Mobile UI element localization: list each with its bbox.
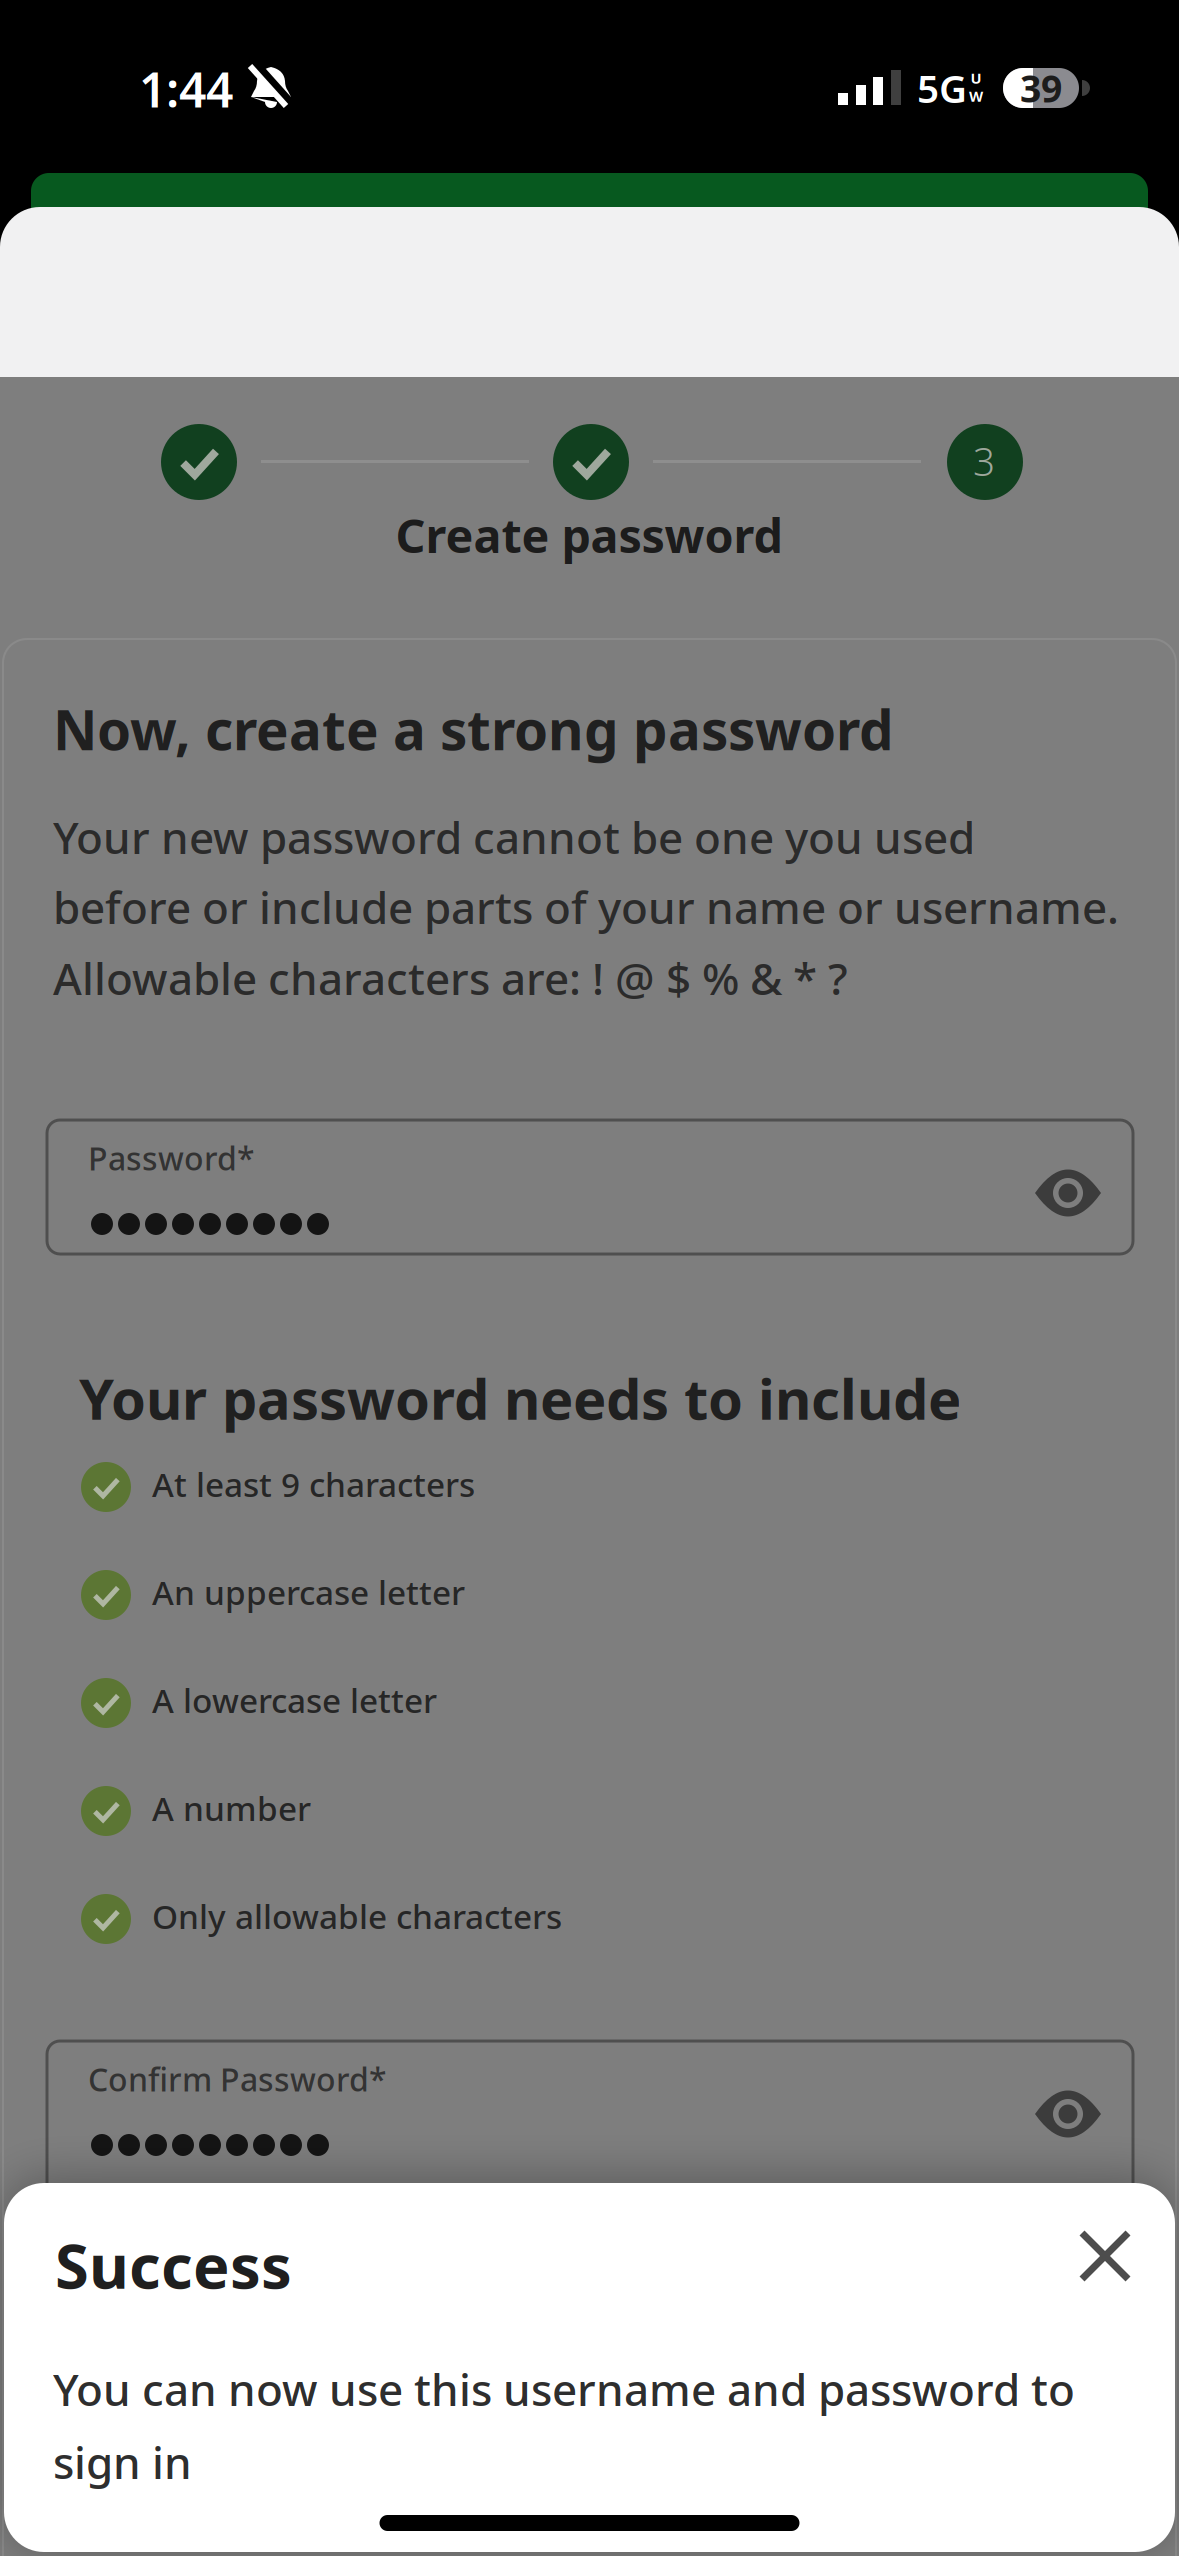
staticText: U	[970, 68, 981, 88]
staticText: At least 9 characters	[152, 1462, 475, 1506]
staticText: before or include parts of your name or …	[53, 878, 1119, 936]
staticText: sign in	[53, 2433, 192, 2491]
staticText: 5G	[917, 62, 967, 114]
button[interactable]: Close	[1075, 2226, 1135, 2286]
button[interactable]: Show password	[1033, 1168, 1103, 1218]
staticText: Confirm Password*	[88, 2058, 387, 2100]
staticText: A number	[152, 1786, 311, 1830]
staticText: 39	[1020, 63, 1062, 113]
staticText: An uppercase letter	[152, 1570, 465, 1614]
staticText: 1:44	[139, 57, 233, 121]
staticText: Your new password cannot be one you used	[53, 808, 975, 866]
staticText: 3	[973, 435, 995, 487]
staticText: You can now use this username and passwo…	[53, 2360, 1075, 2418]
staticText: Now, create a strong password	[53, 693, 894, 765]
staticText: Allowable characters are: ! @ $ % & * ?	[53, 949, 848, 1007]
button[interactable]: Show password	[1033, 2089, 1103, 2139]
staticText: Create password	[395, 504, 782, 566]
staticText: A lowercase letter	[152, 1678, 437, 1722]
staticText: Your password needs to include	[79, 1361, 961, 1435]
staticText: Success	[55, 2224, 292, 2306]
staticText: Password*	[88, 1137, 255, 1179]
staticText: Only allowable characters	[152, 1894, 562, 1938]
staticText: W	[969, 86, 983, 106]
